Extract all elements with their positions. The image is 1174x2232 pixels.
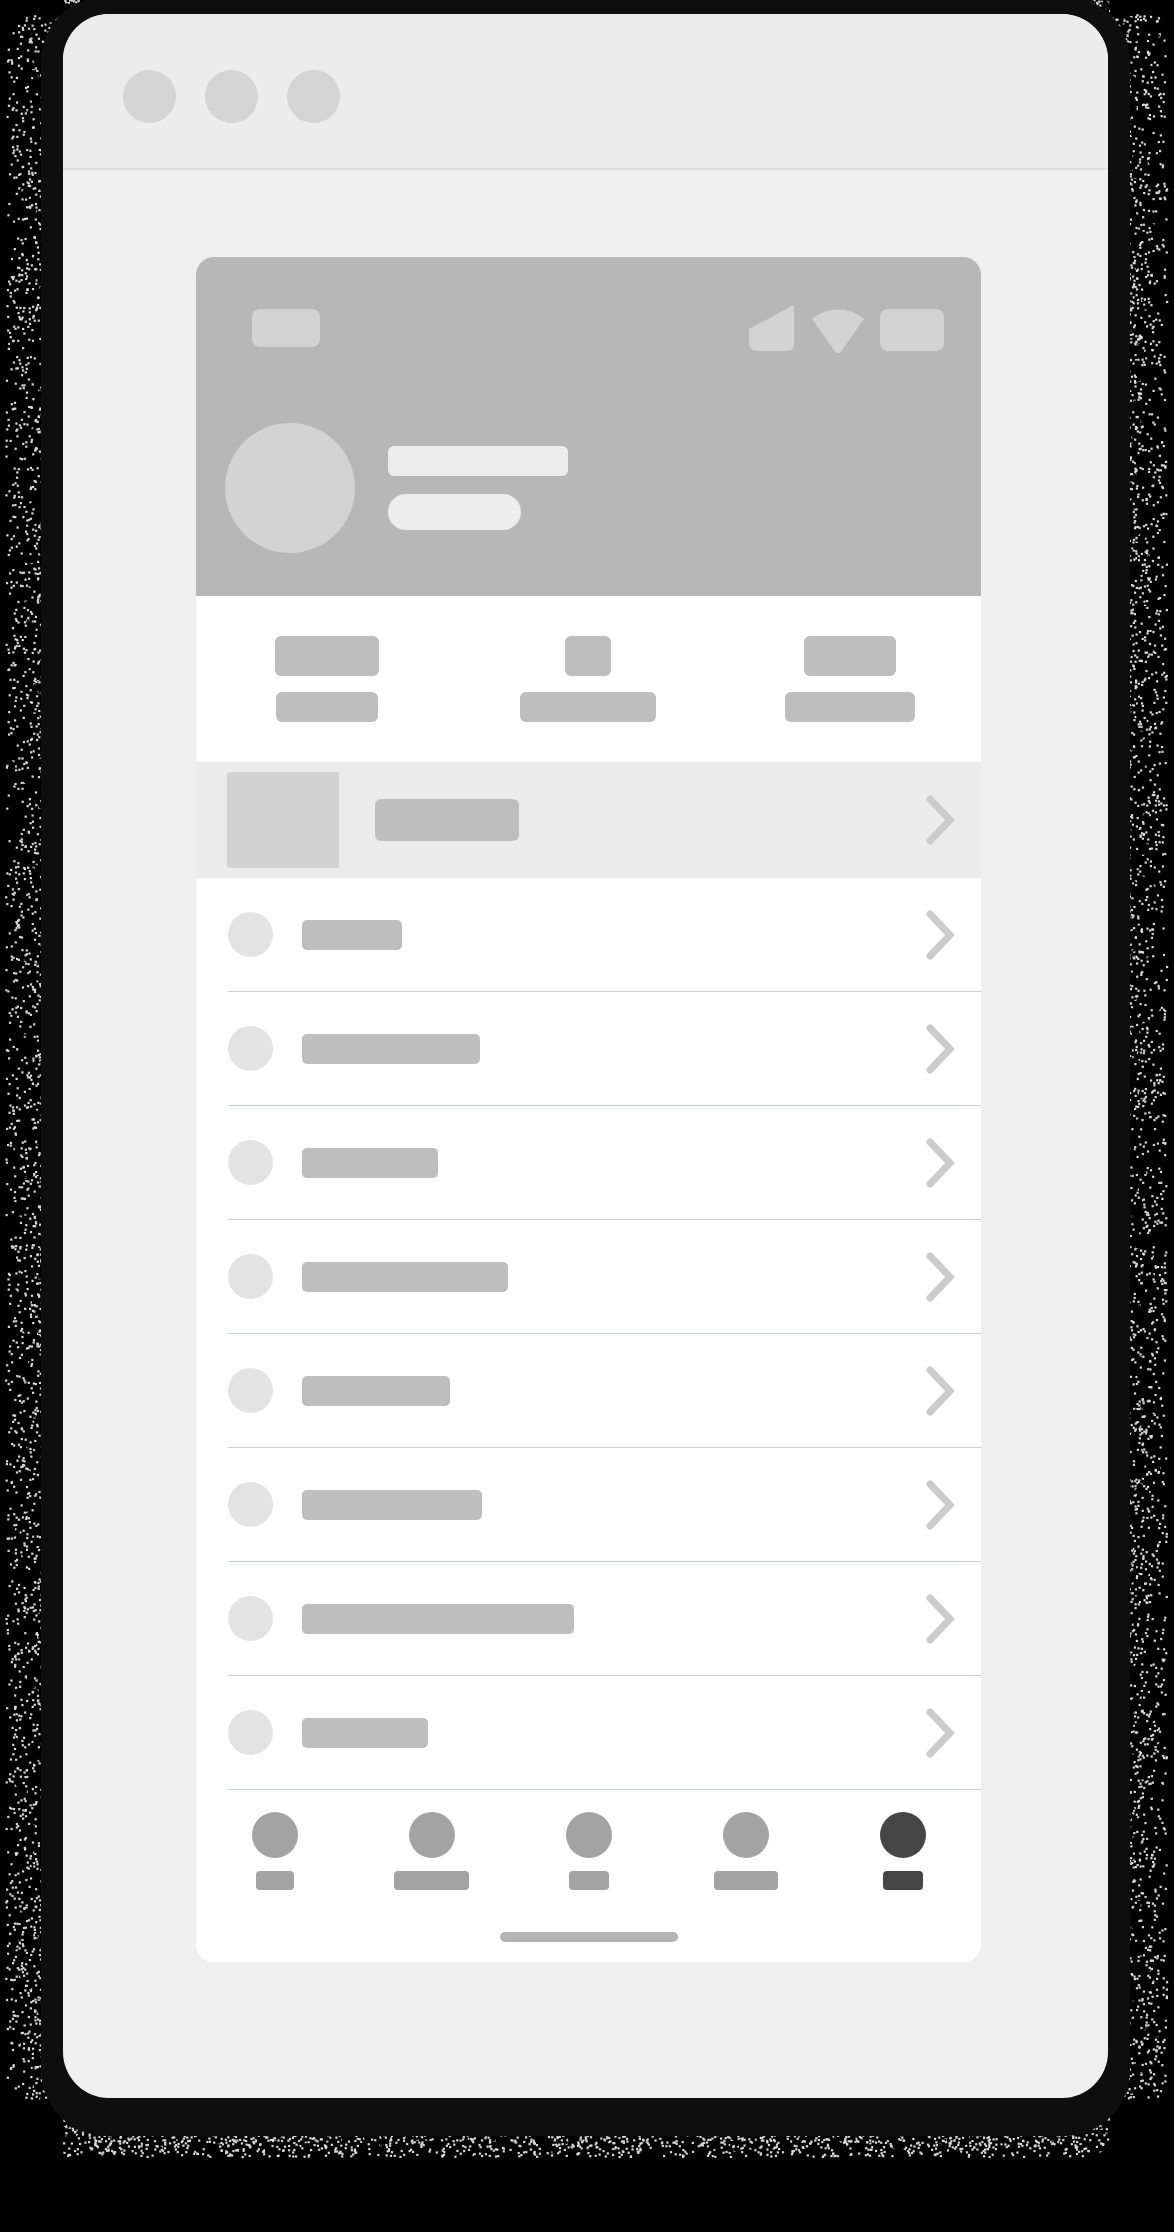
button[interactable]	[196, 992, 981, 1105]
button[interactable]	[196, 1676, 981, 1789]
button[interactable]	[196, 596, 457, 762]
button[interactable]: Activity	[667, 1790, 824, 1912]
button[interactable]	[196, 762, 981, 878]
button[interactable]	[196, 1220, 981, 1333]
button[interactable]: Add	[510, 1790, 667, 1912]
button[interactable]	[196, 1334, 981, 1447]
button[interactable]	[457, 596, 719, 762]
button[interactable]: Search	[353, 1790, 510, 1912]
button[interactable]	[719, 596, 981, 762]
button[interactable]: Home	[196, 1790, 353, 1912]
button[interactable]: Profile	[824, 1790, 981, 1912]
button[interactable]	[196, 878, 981, 991]
button[interactable]	[196, 1448, 981, 1561]
button[interactable]	[196, 1562, 981, 1675]
button[interactable]	[196, 1106, 981, 1219]
